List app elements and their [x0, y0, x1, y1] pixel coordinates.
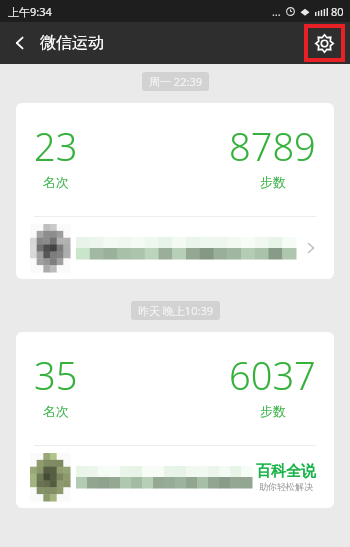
staticText: 6037 — [229, 349, 316, 401]
staticText: 8789 — [229, 120, 316, 172]
staticText: 步数 — [260, 403, 286, 419]
staticText: … — [272, 4, 281, 19]
staticText: 名次 — [43, 174, 69, 190]
staticText: 昨天 晚上10:39 — [138, 303, 213, 318]
staticText: 80 — [331, 4, 344, 19]
staticText: 微信运动 — [40, 33, 104, 53]
button[interactable]: 23 — [16, 103, 334, 279]
staticText: 助你轻松解决 — [259, 481, 313, 492]
staticText: 步数 — [260, 174, 286, 190]
staticText: 名次 — [43, 403, 69, 419]
staticText: 23 — [34, 120, 78, 172]
button[interactable]: Back — [0, 22, 112, 64]
button[interactable]: 35 — [16, 332, 334, 508]
staticText: 周一 22:39 — [149, 74, 202, 89]
button[interactable]: Settings — [304, 24, 345, 62]
staticText: 上午9:34 — [8, 4, 52, 19]
staticText: 35 — [34, 349, 78, 401]
staticText: 百科全说 — [256, 462, 316, 481]
